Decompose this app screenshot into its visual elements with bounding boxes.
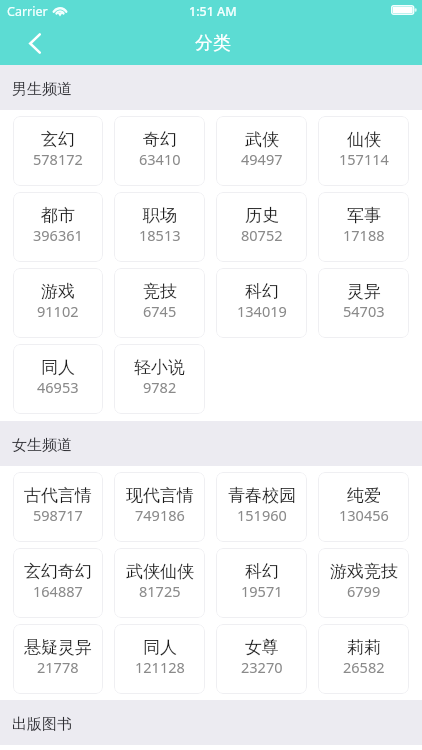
staticText: 164887 [33, 581, 83, 601]
button[interactable]: 轻小说 [114, 344, 205, 414]
staticText: 游戏竞技 [330, 561, 398, 582]
button[interactable]: 军事 [318, 192, 409, 262]
staticText: 古代言情 [24, 485, 92, 506]
staticText: 女尊 [245, 637, 279, 658]
staticText: 578172 [33, 149, 83, 169]
staticText: 游戏 [41, 281, 75, 302]
button[interactable]: Back [0, 22, 70, 65]
staticText: 青春校园 [228, 485, 296, 506]
button[interactable]: 都市 [13, 192, 103, 262]
staticText: 91102 [37, 301, 79, 321]
staticText: 54703 [343, 301, 385, 321]
staticText: 悬疑灵异 [24, 637, 92, 658]
button[interactable]: 同人 [114, 624, 205, 694]
button[interactable]: 科幻 [216, 548, 307, 618]
button[interactable]: 女尊 [216, 624, 307, 694]
staticText: 玄幻 [41, 129, 75, 150]
button[interactable]: 现代言情 [114, 472, 205, 542]
button[interactable]: 纯爱 [318, 472, 409, 542]
staticText: 26582 [343, 657, 385, 677]
staticText: 49497 [241, 149, 283, 169]
button[interactable]: 游戏竞技 [318, 548, 409, 618]
staticText: 武侠 [245, 129, 279, 150]
staticText: 130456 [339, 505, 389, 525]
staticText: 奇幻 [143, 129, 177, 150]
staticText: 6799 [347, 581, 381, 601]
button[interactable]: 历史 [216, 192, 307, 262]
button[interactable]: 莉莉 [318, 624, 409, 694]
staticText: 科幻 [245, 281, 279, 302]
staticText: 军事 [347, 205, 381, 226]
staticText: 科幻 [245, 561, 279, 582]
button[interactable]: 灵异 [318, 268, 409, 338]
button[interactable]: 仙侠 [318, 116, 409, 186]
staticText: 9782 [143, 377, 177, 397]
staticText: 莉莉 [347, 637, 381, 658]
staticText: 1:51 AM [189, 3, 237, 20]
staticText: 都市 [41, 205, 75, 226]
staticText: 武侠仙侠 [126, 561, 194, 582]
button[interactable]: 悬疑灵异 [13, 624, 103, 694]
button[interactable]: 游戏 [13, 268, 103, 338]
staticText: 灵异 [347, 281, 381, 302]
staticText: 81725 [139, 581, 181, 601]
staticText: 21778 [37, 657, 79, 677]
staticText: 玄幻奇幻 [24, 561, 92, 582]
staticText: 现代言情 [126, 485, 194, 506]
staticText: 女生频道 [12, 436, 72, 455]
staticText: 19571 [241, 581, 283, 601]
staticText: 同人 [143, 637, 177, 658]
button[interactable]: 科幻 [216, 268, 307, 338]
staticText: 396361 [33, 225, 83, 245]
staticText: 6745 [143, 301, 177, 321]
staticText: 134019 [237, 301, 287, 321]
staticText: 历史 [245, 205, 279, 226]
staticText: 同人 [41, 357, 75, 378]
staticText: 121128 [135, 657, 185, 677]
staticText: 仙侠 [347, 129, 381, 150]
staticText: 151960 [237, 505, 287, 525]
staticText: 男生频道 [12, 80, 72, 99]
button[interactable]: 青春校园 [216, 472, 307, 542]
staticText: 18513 [139, 225, 181, 245]
button[interactable]: 同人 [13, 344, 103, 414]
button[interactable]: 职场 [114, 192, 205, 262]
staticText: 598717 [33, 505, 83, 525]
button[interactable]: 玄幻 [13, 116, 103, 186]
button[interactable]: 竞技 [114, 268, 205, 338]
button[interactable]: 武侠 [216, 116, 307, 186]
staticText: 出版图书 [12, 715, 72, 734]
staticText: 17188 [343, 225, 385, 245]
staticText: 竞技 [143, 281, 177, 302]
button[interactable]: 古代言情 [13, 472, 103, 542]
staticText: 轻小说 [134, 357, 185, 378]
button[interactable]: 奇幻 [114, 116, 205, 186]
staticText: 23270 [241, 657, 283, 677]
staticText: 职场 [143, 205, 177, 226]
staticText: 157114 [339, 149, 389, 169]
staticText: 749186 [135, 505, 185, 525]
button[interactable]: 武侠仙侠 [114, 548, 205, 618]
staticText: 80752 [241, 225, 283, 245]
staticText: 纯爱 [347, 485, 381, 506]
staticText: 分类 [195, 32, 231, 55]
staticText: 46953 [37, 377, 79, 397]
button[interactable]: 玄幻奇幻 [13, 548, 103, 618]
staticText: 63410 [139, 149, 181, 169]
staticText: Carrier [7, 3, 48, 20]
